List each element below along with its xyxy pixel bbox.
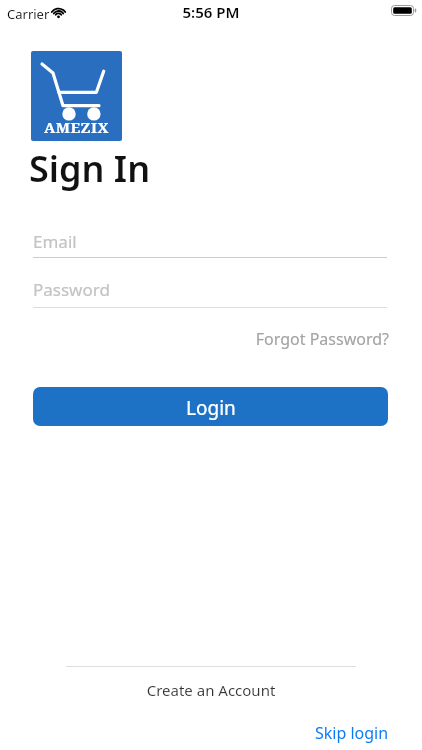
button[interactable]: Email (33, 228, 387, 258)
staticText: Sign In (29, 144, 151, 193)
button[interactable]: Create an Account (0, 680, 422, 700)
staticText: AMEZIX (44, 117, 109, 137)
staticText: Login (186, 395, 236, 421)
staticText: Carrier (7, 5, 50, 23)
staticText: Email (33, 230, 77, 253)
staticText: Password (33, 278, 110, 301)
staticText: 5:56 PM (0, 2, 422, 22)
button[interactable]: Password (33, 278, 387, 308)
button[interactable]: Login (33, 387, 388, 426)
button[interactable]: Forgot Password? (0, 328, 389, 350)
button[interactable]: Skip login (315, 722, 389, 744)
